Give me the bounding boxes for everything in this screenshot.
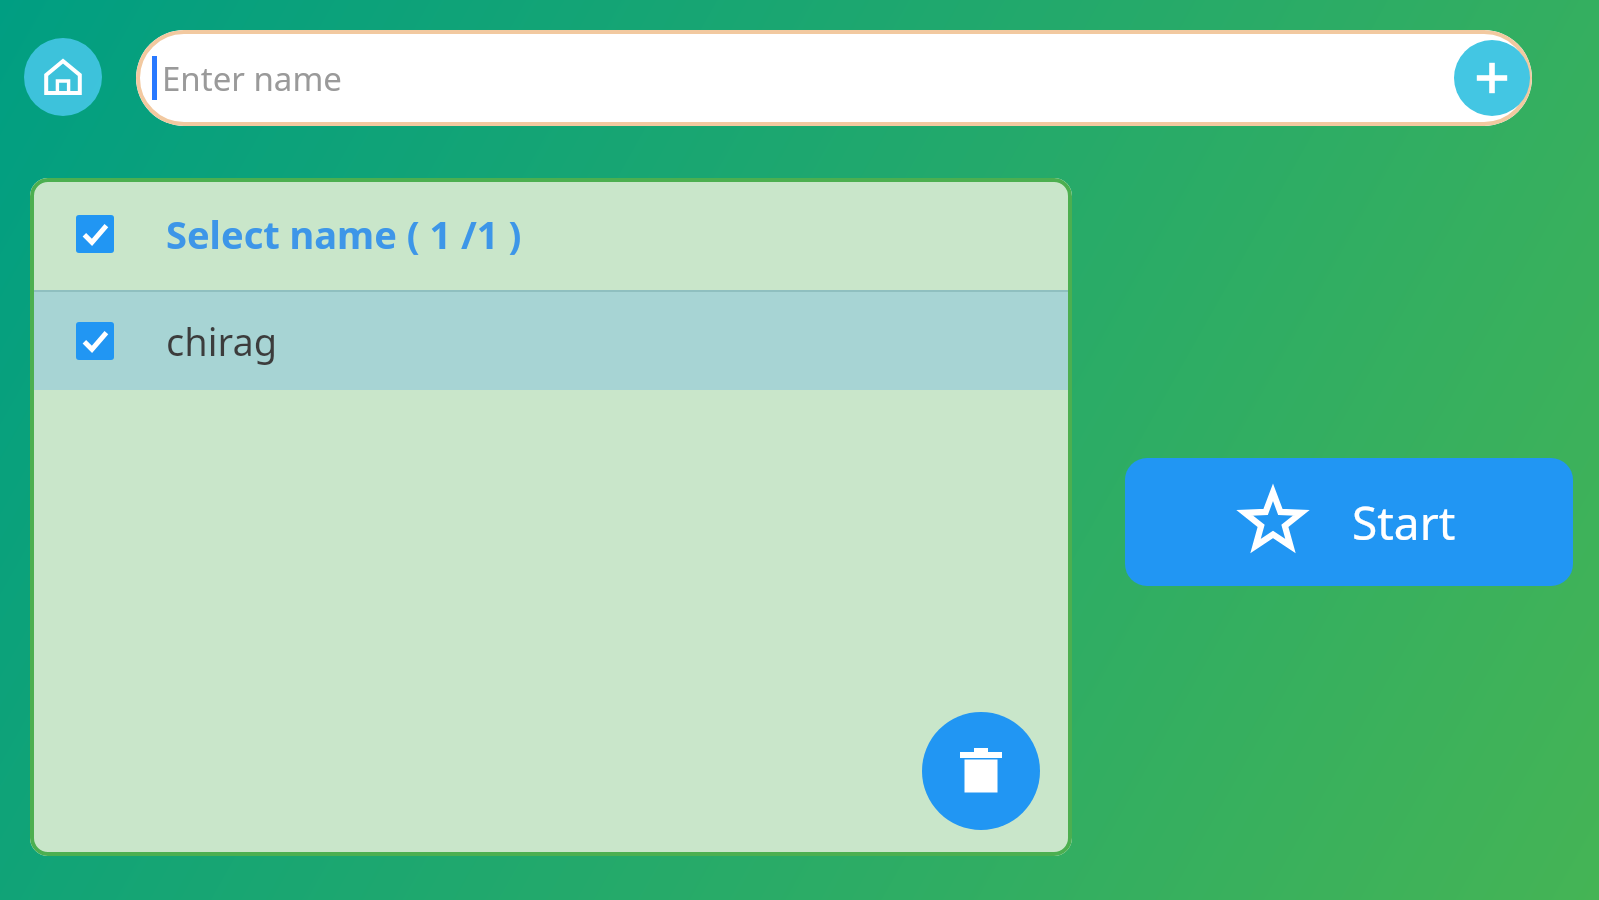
staticText: Select name ( 1 /1 ) bbox=[166, 208, 522, 260]
button[interactable]: Start bbox=[1125, 458, 1573, 586]
button[interactable]: Enter name bbox=[136, 30, 1532, 126]
staticText: Start bbox=[1352, 491, 1456, 554]
button[interactable]: chirag bbox=[30, 292, 1072, 390]
button[interactable]: Add name bbox=[1454, 40, 1530, 116]
button[interactable]: Select name ( 1 /1 ) bbox=[30, 178, 1072, 290]
staticText: Enter name bbox=[162, 56, 342, 101]
button[interactable]: Delete bbox=[922, 712, 1040, 830]
staticText: chirag bbox=[166, 315, 278, 367]
button[interactable]: Home bbox=[24, 38, 102, 116]
